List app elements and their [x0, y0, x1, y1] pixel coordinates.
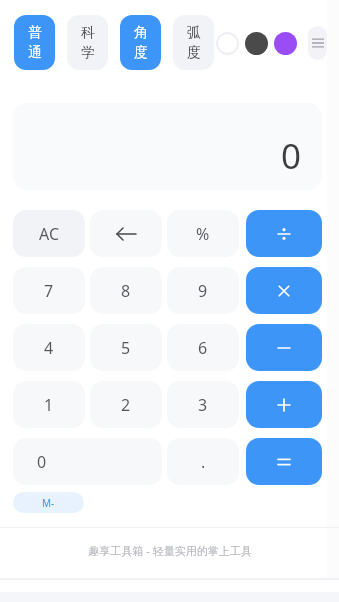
button[interactable]: Add: [246, 381, 322, 428]
staticText: 角: [134, 24, 148, 42]
staticText: 度: [134, 44, 148, 62]
staticText: 6: [198, 337, 208, 359]
staticText: 2: [121, 394, 131, 416]
staticText: %: [196, 223, 210, 245]
button[interactable]: 5: [90, 324, 162, 371]
staticText: 5: [121, 337, 131, 359]
button[interactable]: M-: [13, 492, 84, 513]
button[interactable]: 8: [90, 267, 162, 314]
staticText: 1: [44, 394, 54, 416]
staticText: 0: [281, 132, 302, 180]
button[interactable]: AC: [13, 210, 85, 257]
button[interactable]: 角: [120, 15, 161, 70]
staticText: 趣享工具箱 - 轻量实用的掌上工具: [88, 543, 252, 558]
staticText: 普: [28, 24, 42, 42]
staticText: 8: [121, 280, 131, 302]
staticText: 4: [44, 337, 54, 359]
staticText: 9: [198, 280, 208, 302]
staticText: .: [201, 451, 206, 473]
staticText: 科: [81, 24, 95, 42]
staticText: 0: [37, 451, 47, 473]
button[interactable]: 9: [167, 267, 239, 314]
button[interactable]: 3: [167, 381, 239, 428]
staticText: 7: [44, 280, 54, 302]
button[interactable]: 6: [167, 324, 239, 371]
button[interactable]: 科: [67, 15, 108, 70]
staticText: 通: [28, 44, 42, 62]
button[interactable]: Subtract: [246, 324, 322, 371]
button[interactable]: Menu: [308, 26, 327, 60]
button[interactable]: 0: [13, 438, 162, 485]
button[interactable]: Equals: [246, 438, 322, 485]
button[interactable]: 弧: [173, 15, 214, 70]
staticText: 弧: [187, 24, 201, 42]
button[interactable]: Divide: [246, 210, 322, 257]
staticText: 3: [198, 394, 208, 416]
button[interactable]: Dark theme: [245, 32, 268, 55]
button[interactable]: 4: [13, 324, 85, 371]
staticText: M-: [42, 496, 55, 510]
button[interactable]: .: [167, 438, 239, 485]
button[interactable]: Multiply: [246, 267, 322, 314]
staticText: AC: [39, 223, 60, 245]
button[interactable]: 普: [14, 15, 55, 70]
button[interactable]: Backspace: [90, 210, 162, 257]
button[interactable]: 7: [13, 267, 85, 314]
button[interactable]: 1: [13, 381, 85, 428]
button[interactable]: 2: [90, 381, 162, 428]
staticText: 度: [187, 44, 201, 62]
button[interactable]: %: [167, 210, 239, 257]
button[interactable]: Purple theme: [274, 32, 297, 55]
staticText: 学: [81, 44, 95, 62]
button[interactable]: White theme: [216, 32, 239, 55]
